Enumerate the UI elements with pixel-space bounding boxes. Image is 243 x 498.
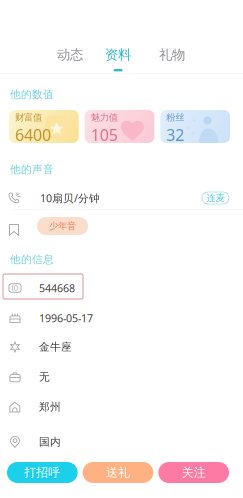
staticText: 粉丝 bbox=[166, 112, 184, 123]
staticText: 国内 bbox=[39, 435, 61, 448]
button[interactable]: 打招呼 bbox=[7, 462, 78, 483]
staticText: 郑州 bbox=[39, 400, 61, 413]
staticText: 他的声音 bbox=[10, 163, 54, 176]
staticText: ID bbox=[11, 284, 18, 292]
staticText: 资料 bbox=[105, 47, 131, 63]
staticText: 送礼 bbox=[106, 465, 130, 480]
staticText: 少年音 bbox=[49, 220, 76, 232]
staticText: 无 bbox=[39, 370, 50, 383]
staticText: 32 bbox=[166, 124, 184, 145]
button[interactable]: 关注 bbox=[158, 462, 229, 483]
staticText: 礼物 bbox=[159, 47, 185, 63]
button[interactable]: 动态 bbox=[52, 47, 88, 71]
staticText: 他的数值 bbox=[10, 88, 54, 101]
staticText: 544668 bbox=[39, 281, 75, 295]
staticText: 105 bbox=[91, 124, 118, 145]
staticText: 他的信息 bbox=[10, 253, 54, 266]
staticText: 财富值 bbox=[15, 112, 42, 123]
staticText: 10扇贝/分钟 bbox=[40, 191, 100, 205]
button[interactable]: 资料 bbox=[100, 47, 136, 71]
staticText: 动态 bbox=[57, 47, 83, 63]
staticText: 关注 bbox=[182, 465, 206, 480]
button[interactable]: 送礼 bbox=[83, 462, 153, 483]
staticText: 1996-05-17 bbox=[39, 311, 93, 325]
staticText: 连麦 bbox=[206, 192, 224, 204]
staticText: 金牛座 bbox=[39, 340, 72, 353]
staticText: 打招呼 bbox=[24, 465, 60, 480]
button[interactable]: 礼物 bbox=[154, 47, 190, 71]
staticText: 6400 bbox=[15, 124, 51, 145]
staticText: 魅力值 bbox=[91, 112, 118, 123]
button[interactable]: 连麦 bbox=[202, 192, 229, 204]
